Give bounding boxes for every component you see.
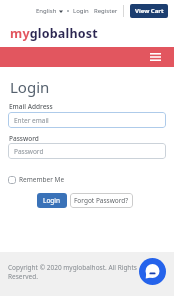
button[interactable] (150, 53, 161, 61)
button[interactable] (139, 258, 166, 285)
staticText: Email Address (9, 102, 53, 111)
staticText: Password (14, 147, 44, 156)
button[interactable]: Enter email (8, 112, 166, 128)
button[interactable]: Login (73, 7, 89, 15)
button[interactable]: Password (8, 143, 166, 159)
button[interactable]: Forgot Password? (70, 193, 133, 208)
button[interactable]: Login (37, 193, 67, 208)
staticText: Remember Me (19, 175, 65, 184)
button[interactable]: Register (94, 7, 118, 15)
staticText: myglobalhost (10, 25, 98, 42)
staticText: Login (10, 77, 50, 97)
staticText: Forgot Password? (74, 196, 129, 205)
staticText: Login (43, 196, 61, 205)
staticText: View Cart (135, 7, 164, 15)
button[interactable]: Remember Me (8, 175, 65, 184)
staticText: English (36, 7, 57, 15)
staticText: Password (9, 134, 39, 143)
button[interactable]: View Cart (130, 4, 168, 18)
staticText: Enter email (14, 116, 49, 125)
staticText: Copyright © 2020 myglobalhost. All Right… (8, 263, 137, 281)
button[interactable]: English (36, 7, 63, 15)
